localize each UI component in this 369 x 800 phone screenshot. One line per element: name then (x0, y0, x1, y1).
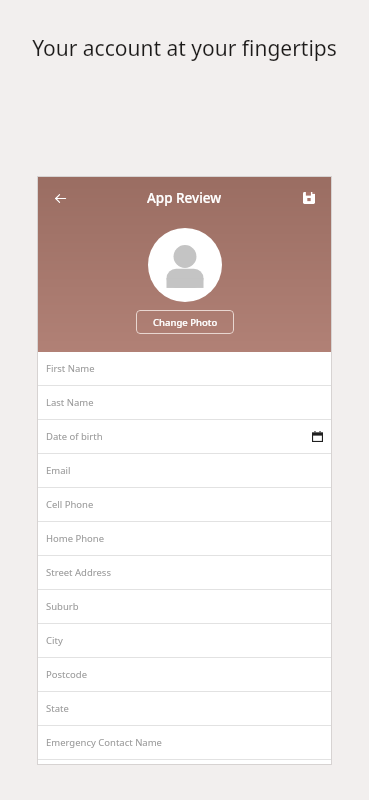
staticText: Change Photo (153, 316, 218, 329)
staticText: Email (46, 464, 71, 477)
button[interactable]: Back (47, 185, 73, 211)
button[interactable]: Emergency Contact Name (37, 726, 332, 760)
button[interactable]: Home Phone (37, 522, 332, 556)
button[interactable]: Suburb (37, 590, 332, 624)
button[interactable]: Change Photo (136, 310, 234, 334)
staticText: City (46, 634, 63, 647)
staticText: Suburb (46, 600, 79, 613)
staticText: Street Address (46, 566, 111, 579)
button[interactable]: Street Address (37, 556, 332, 590)
staticText: Date of birth (46, 430, 103, 443)
staticText: App Review (147, 189, 222, 207)
staticText: First Name (46, 362, 95, 375)
staticText: Cell Phone (46, 498, 94, 511)
button[interactable]: Postcode (37, 658, 332, 692)
button[interactable]: Email (37, 454, 332, 488)
button[interactable]: Save (296, 185, 322, 211)
button[interactable]: State (37, 692, 332, 726)
staticText: Postcode (46, 668, 87, 681)
staticText: Your account at your fingertips (30, 34, 339, 63)
staticText: Emergency Contact Name (46, 736, 162, 749)
button[interactable]: Date of birth (37, 420, 332, 454)
button[interactable]: First Name (37, 352, 332, 386)
button[interactable]: Cell Phone (37, 488, 332, 522)
button[interactable]: City (37, 624, 332, 658)
button[interactable]: Last Name (37, 386, 332, 420)
staticText: Home Phone (46, 532, 105, 545)
staticText: State (46, 702, 69, 715)
staticText: Last Name (46, 396, 94, 409)
